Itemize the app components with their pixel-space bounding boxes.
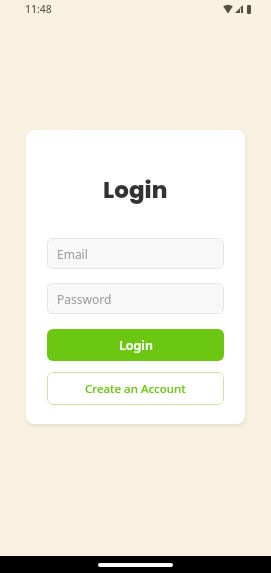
button[interactable]: Password: [47, 283, 224, 314]
button[interactable]: Email: [47, 238, 224, 269]
button[interactable]: Login: [47, 329, 224, 361]
staticText: Create an Account: [85, 381, 186, 397]
staticText: Login: [103, 174, 168, 206]
staticText: Password: [57, 291, 112, 307]
staticText: Login: [119, 337, 153, 354]
other: Mobile signal: [235, 5, 243, 13]
other: Wi-Fi: [223, 5, 233, 13]
other: Battery: [247, 5, 251, 14]
other: Home: [98, 563, 173, 567]
button[interactable]: Create an Account: [47, 372, 224, 405]
staticText: Email: [57, 246, 88, 262]
staticText: 11:48: [25, 2, 52, 16]
